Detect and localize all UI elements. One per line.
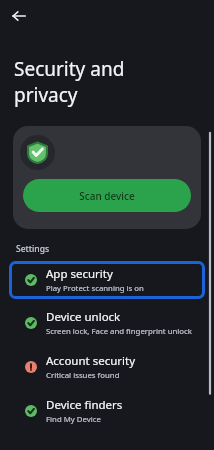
staticText: Device unlock <box>46 309 121 325</box>
button[interactable]: Account security <box>9 348 205 386</box>
staticText: Security and <box>14 56 125 82</box>
button[interactable]: Scan device <box>23 179 191 212</box>
staticText: Device finders <box>46 397 123 413</box>
staticText: Screen lock, Face and fingerprint unlock <box>46 326 192 337</box>
staticText: Account security <box>46 353 136 369</box>
staticText: Critical issues found <box>46 370 120 381</box>
staticText: privacy <box>14 82 78 108</box>
button[interactable]: Back <box>6 3 32 29</box>
button[interactable]: Device unlock <box>9 304 205 342</box>
button[interactable]: Device finders <box>9 392 205 430</box>
staticText: Scan device <box>79 189 135 203</box>
staticText: Settings <box>16 243 50 255</box>
staticText: App security <box>46 266 113 282</box>
staticText: Play Protect scanning is on <box>46 283 144 294</box>
staticText: Find My Device <box>46 414 101 425</box>
button[interactable]: App security <box>9 261 205 299</box>
